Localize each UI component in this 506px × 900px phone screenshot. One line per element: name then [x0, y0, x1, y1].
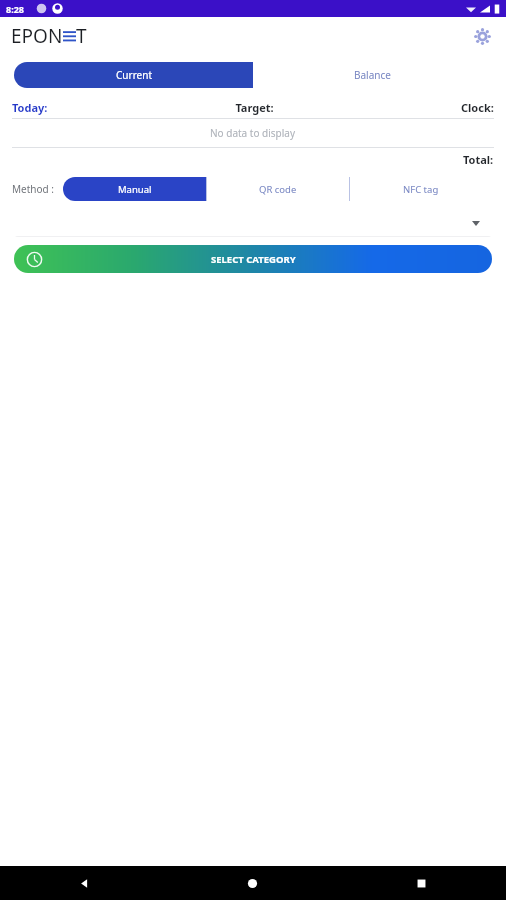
button[interactable]: Back	[0, 866, 168, 900]
staticText: Total:	[463, 152, 494, 167]
button[interactable]: Settings	[467, 21, 497, 51]
staticText: EPON	[11, 23, 63, 49]
staticText: Method :	[12, 182, 54, 196]
button[interactable]: Balance	[253, 62, 492, 88]
button[interactable]: NFC tag	[350, 177, 492, 201]
staticText: Current	[116, 68, 152, 82]
staticText: Manual	[118, 183, 152, 196]
button[interactable]: Manual	[63, 177, 206, 201]
staticText: NFC tag	[403, 183, 439, 196]
button[interactable]: Home	[168, 866, 337, 900]
button[interactable]: Select item	[14, 209, 492, 237]
staticText: Clock:	[461, 100, 494, 115]
staticText: T	[76, 23, 87, 49]
staticText: Target:	[48, 100, 461, 115]
button[interactable]: QR code	[207, 177, 349, 201]
button[interactable]: Recent apps	[337, 866, 506, 900]
staticText: 8:28	[6, 3, 24, 15]
staticText: Balance	[354, 68, 391, 82]
staticText: Today:	[12, 100, 48, 115]
staticText: No data to display	[210, 126, 296, 140]
staticText: SELECT CATEGORY	[211, 253, 296, 266]
button[interactable]: Current	[14, 62, 253, 88]
staticText: QR code	[259, 183, 297, 196]
button[interactable]: SELECT CATEGORY	[14, 245, 492, 273]
